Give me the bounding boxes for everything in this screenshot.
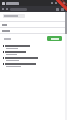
button[interactable]: Toolbar action — [2, 8, 4, 10]
button[interactable]: Toolbar action — [55, 2, 57, 4]
other: Recording indicator — [51, 0, 67, 16]
button[interactable]: Menu — [56, 8, 59, 11]
button[interactable]: Toolbar action — [6, 8, 8, 10]
button[interactable] — [0, 56, 67, 62]
button[interactable] — [0, 62, 67, 68]
button[interactable]: Toolbar action — [51, 2, 53, 4]
button[interactable] — [47, 36, 62, 41]
button[interactable]: Toolbar action — [59, 2, 61, 4]
button[interactable] — [0, 44, 67, 50]
button[interactable] — [0, 22, 67, 27]
button[interactable] — [3, 14, 25, 18]
button[interactable]: More options — [61, 8, 64, 11]
button[interactable] — [0, 28, 67, 33]
button[interactable] — [0, 50, 67, 56]
button[interactable] — [3, 37, 12, 41]
button[interactable]: Toolbar action — [63, 2, 65, 4]
